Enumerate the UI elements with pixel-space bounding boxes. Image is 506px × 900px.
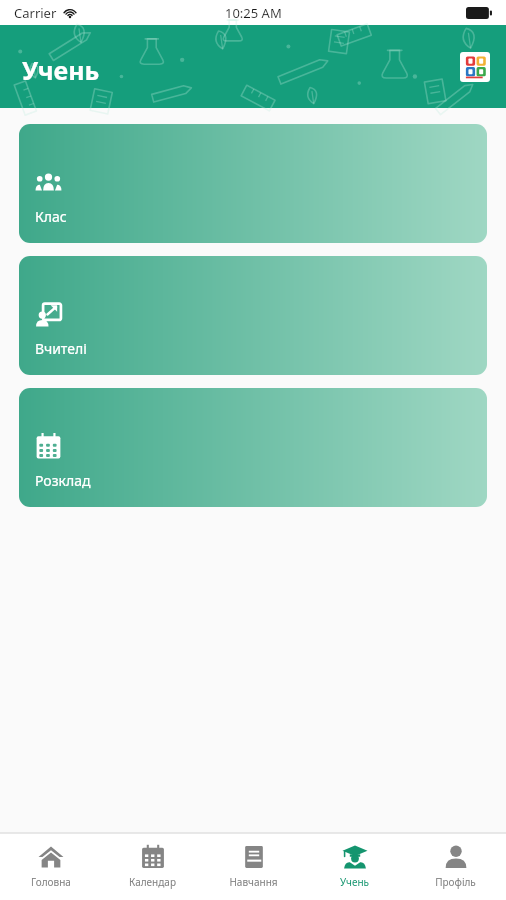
button[interactable]: Головна [0,833,102,900]
staticText: Carrier [14,4,57,22]
staticText: Клас [35,207,67,226]
button[interactable]: Навчання [203,833,304,900]
staticText: Учень [340,875,369,889]
staticText: Головна [31,875,71,889]
staticText: Розклад [35,471,91,490]
button[interactable]: Клас [19,124,487,243]
button[interactable]: Профіль [405,833,506,900]
staticText: 10:25 AM [225,4,282,22]
staticText: Профіль [435,875,476,889]
button[interactable]: Календар [102,833,203,900]
button[interactable]: Logo [460,52,490,82]
staticText: Навчання [229,875,278,889]
staticText: Учень [22,53,100,87]
button[interactable]: Учень [304,833,405,900]
button[interactable]: Вчителі [19,256,487,375]
button[interactable]: Розклад [19,388,487,507]
staticText: Календар [129,875,176,889]
staticText: Вчителі [35,339,87,358]
